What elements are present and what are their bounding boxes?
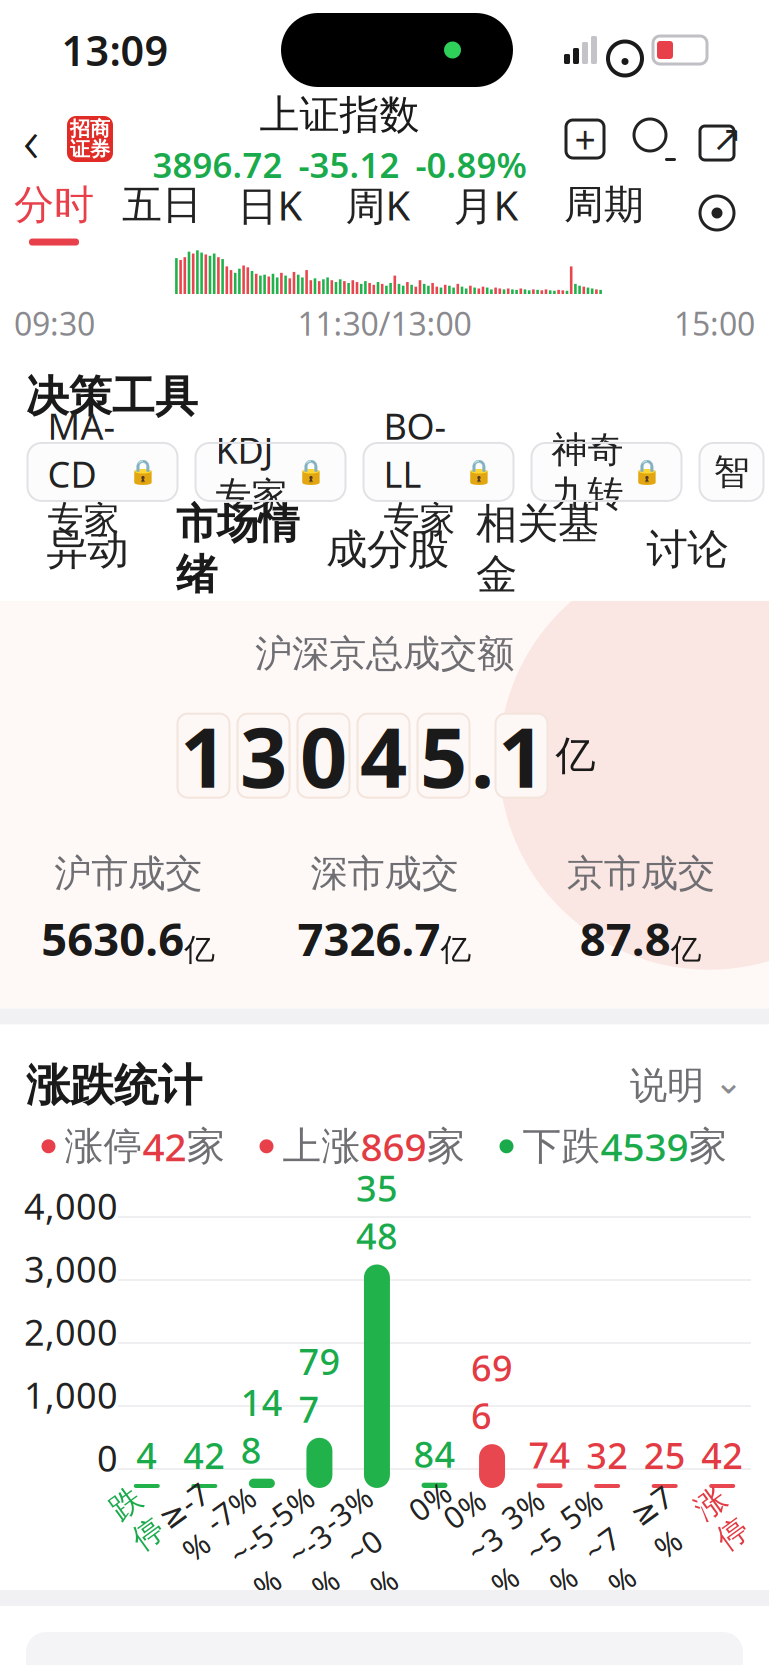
button[interactable]: 市场情绪: [157, 515, 317, 601]
staticText: 🔒: [463, 458, 493, 486]
staticText: 42: [183, 1431, 225, 1479]
staticText: 869: [360, 1121, 426, 1172]
staticText: 84: [413, 1430, 455, 1478]
staticText: 涨跌统计: [26, 1059, 202, 1113]
staticText: 成分股: [326, 524, 449, 575]
staticText: 讨论: [646, 524, 728, 575]
staticText: 5%~7%: [583, 1481, 626, 1603]
staticText: ≥7%: [641, 1481, 685, 1562]
button[interactable]: 异动: [17, 515, 157, 601]
button[interactable]: Back: [0, 103, 62, 175]
button[interactable]: KDJ专家: [195, 443, 345, 501]
staticText: 5: [420, 701, 467, 811]
staticText: 4: [136, 1431, 157, 1479]
button[interactable]: 月K: [432, 178, 540, 248]
staticText: 🔒: [295, 458, 325, 486]
staticText: 说明: [630, 1063, 704, 1109]
staticText: ⌄: [714, 1062, 743, 1101]
staticText: 智: [713, 450, 749, 494]
staticText: -3%~0%: [344, 1481, 397, 1603]
button[interactable]: 周期: [540, 178, 668, 248]
staticText: 证券: [70, 137, 110, 162]
staticText: BOLL专家: [383, 402, 455, 542]
button[interactable]: 相关基金: [457, 515, 617, 601]
staticText: 日K: [237, 178, 302, 231]
staticText: 家: [688, 1123, 727, 1170]
staticText: 家: [426, 1123, 465, 1170]
staticText: 亿: [555, 731, 595, 780]
staticText: 4,000: [24, 1182, 118, 1230]
staticText: 2,000: [24, 1308, 118, 1356]
staticText: 🔒: [127, 458, 157, 486]
staticText: 3896.72: [152, 141, 282, 187]
button[interactable]: Add to watchlist: [561, 113, 609, 165]
button[interactable]: 说明: [630, 1062, 743, 1109]
staticText: 亿: [671, 931, 702, 969]
staticText: 797: [298, 1337, 340, 1433]
staticText: 3: [240, 701, 287, 811]
staticText: -5%~-3%: [286, 1481, 339, 1603]
staticText: 市场情绪: [176, 499, 299, 600]
staticText: 13:09: [61, 23, 168, 77]
button[interactable]: Chart settings: [687, 183, 747, 243]
button[interactable]: Share: [699, 115, 743, 163]
staticText: 0%: [408, 1481, 451, 1522]
staticText: .: [471, 701, 494, 811]
staticText: 五日: [122, 180, 202, 229]
button[interactable]: 成分股: [317, 515, 457, 601]
staticText: 32: [586, 1431, 628, 1479]
staticText: MACD专家: [47, 402, 119, 542]
staticText: ≥-7%: [169, 1481, 223, 1562]
staticText: -35.12: [298, 141, 399, 187]
staticText: 涨停: [64, 1123, 142, 1170]
staticText: 0: [97, 1434, 118, 1482]
button[interactable]: 讨论: [617, 515, 757, 601]
staticText: 分时: [14, 180, 94, 229]
button[interactable]: MACD专家: [27, 443, 177, 501]
staticText: 3548: [356, 1164, 398, 1259]
staticText: 1,000: [24, 1371, 118, 1419]
staticText: 相关基金: [476, 499, 599, 600]
button[interactable]: 五日: [108, 178, 216, 248]
staticText: 上涨: [282, 1123, 360, 1170]
staticText: +: [574, 114, 595, 164]
staticText: 上证指数: [259, 90, 419, 139]
staticText: 42: [142, 1121, 186, 1172]
staticText: 0%~3%: [466, 1481, 509, 1603]
staticText: 3%~5%: [525, 1481, 568, 1603]
button[interactable]: 分时: [0, 178, 108, 248]
staticText: 11:30/13:00: [297, 302, 471, 344]
staticText: ‹: [23, 98, 39, 180]
staticText: 亿: [440, 931, 471, 969]
staticText: 696: [471, 1343, 513, 1439]
staticText: 5630.6: [41, 908, 184, 969]
staticText: 下跌: [522, 1123, 600, 1170]
staticText: 异动: [46, 524, 128, 575]
button[interactable]: 神奇九转: [531, 443, 681, 501]
staticText: 涨停: [706, 1481, 737, 1556]
staticText: 🔒: [631, 458, 661, 486]
staticText: 74: [529, 1430, 571, 1478]
staticText: 京市成交: [567, 850, 715, 896]
staticText: KDJ专家: [215, 426, 287, 518]
staticText: 148: [241, 1378, 283, 1474]
button[interactable]: BOLL专家: [363, 443, 513, 501]
button[interactable]: 智: [699, 443, 763, 501]
staticText: 09:30: [14, 302, 95, 344]
staticText: 周期: [564, 180, 644, 229]
staticText: 月K: [453, 178, 518, 231]
staticText: 跌停: [122, 1481, 153, 1556]
staticText: -0.89%: [415, 141, 526, 187]
button[interactable]: Search: [631, 116, 677, 162]
button[interactable]: 日K: [216, 178, 324, 248]
button[interactable]: 招商证券: [62, 111, 118, 167]
staticText: 招商: [70, 116, 110, 141]
staticText: -7%~-5%: [228, 1481, 281, 1603]
staticText: 决策工具: [26, 370, 198, 423]
staticText: 7326.7: [297, 908, 440, 969]
staticText: 1: [498, 701, 545, 811]
staticText: ↗: [712, 118, 742, 159]
button[interactable]: 周K: [324, 178, 432, 248]
staticText: 家: [186, 1123, 225, 1170]
